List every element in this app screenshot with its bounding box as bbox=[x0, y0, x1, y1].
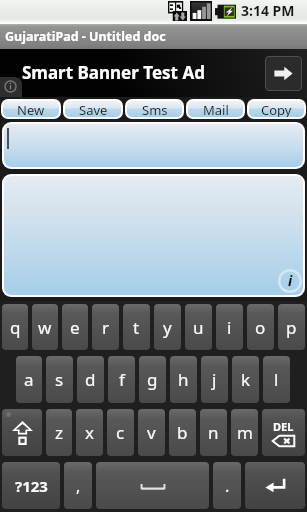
button[interactable]: a bbox=[16, 356, 42, 403]
button[interactable]: u bbox=[185, 304, 212, 350]
button[interactable] bbox=[2, 409, 42, 456]
button[interactable]: ?123 bbox=[2, 462, 60, 509]
staticText: DEL bbox=[273, 419, 294, 434]
staticText: Mail bbox=[203, 101, 229, 117]
button[interactable]: x bbox=[76, 409, 103, 456]
button[interactable]: l bbox=[263, 356, 290, 403]
button[interactable]: i bbox=[216, 304, 243, 350]
staticText: q bbox=[10, 316, 21, 339]
button[interactable]: Save bbox=[65, 101, 121, 117]
staticText: k bbox=[241, 368, 251, 391]
button[interactable]: r bbox=[92, 304, 119, 350]
staticText: h bbox=[178, 368, 189, 391]
button[interactable] bbox=[96, 462, 209, 509]
button[interactable]: s bbox=[46, 356, 73, 403]
staticText: y bbox=[163, 316, 172, 339]
button[interactable]: DEL bbox=[262, 409, 305, 456]
button[interactable]: , bbox=[64, 462, 92, 509]
button[interactable]: Info bbox=[4, 176, 303, 295]
staticText: e bbox=[70, 316, 80, 339]
button[interactable]: Sms bbox=[127, 101, 182, 117]
button[interactable]: h bbox=[170, 356, 197, 403]
button[interactable]: Copy bbox=[249, 101, 304, 117]
staticText: b bbox=[177, 421, 188, 444]
button[interactable] bbox=[4, 124, 303, 167]
staticText: Save bbox=[79, 101, 108, 117]
button[interactable]: p bbox=[278, 304, 305, 350]
button[interactable]: j bbox=[201, 356, 228, 403]
button[interactable]: b bbox=[169, 409, 196, 456]
staticText: Sms bbox=[142, 101, 168, 117]
button[interactable]: Mail bbox=[188, 101, 243, 117]
button[interactable]: w bbox=[32, 304, 58, 350]
staticText: i bbox=[227, 316, 232, 339]
button[interactable]: y bbox=[154, 304, 181, 350]
staticText: d bbox=[85, 368, 96, 391]
button[interactable]: d bbox=[77, 356, 104, 403]
button[interactable]: Open ad bbox=[265, 56, 302, 91]
staticText: x bbox=[85, 421, 94, 444]
staticText: z bbox=[55, 421, 63, 444]
staticText: t bbox=[133, 316, 140, 339]
button[interactable]: f bbox=[108, 356, 135, 403]
button[interactable]: z bbox=[46, 409, 72, 456]
button[interactable]: Ad info bbox=[0, 77, 22, 97]
button[interactable]: o bbox=[247, 304, 274, 350]
button[interactable]: g bbox=[139, 356, 166, 403]
staticText: v bbox=[147, 421, 156, 444]
staticText: Smart Banner Test Ad bbox=[22, 61, 205, 84]
button[interactable]: c bbox=[107, 409, 134, 456]
staticText: j bbox=[212, 368, 217, 391]
staticText: g bbox=[147, 368, 158, 391]
staticText: n bbox=[208, 421, 219, 444]
button[interactable]: . bbox=[213, 462, 241, 509]
button[interactable]: k bbox=[232, 356, 259, 403]
staticText: i bbox=[288, 271, 293, 290]
staticText: ?123 bbox=[15, 476, 48, 496]
button[interactable]: Info bbox=[278, 269, 302, 293]
staticText: GujaratiPad - Untitled doc bbox=[5, 28, 166, 45]
button[interactable]: v bbox=[138, 409, 165, 456]
staticText: 3:14 PM bbox=[241, 1, 295, 20]
staticText: m bbox=[237, 421, 253, 444]
button[interactable]: m bbox=[231, 409, 258, 456]
staticText: New bbox=[17, 101, 45, 117]
button[interactable]: Smart Banner Test Ad bbox=[0, 49, 307, 97]
staticText: l bbox=[274, 368, 279, 391]
staticText: , bbox=[76, 475, 81, 497]
button[interactable]: New bbox=[3, 101, 59, 117]
staticText: w bbox=[38, 316, 52, 339]
staticText: . bbox=[225, 475, 230, 497]
button[interactable]: t bbox=[123, 304, 150, 350]
staticText: p bbox=[286, 316, 297, 339]
staticText: r bbox=[102, 316, 110, 339]
staticText: s bbox=[55, 368, 64, 391]
staticText: o bbox=[255, 316, 266, 339]
button[interactable]: e bbox=[62, 304, 88, 350]
staticText: Copy bbox=[261, 101, 292, 117]
button[interactable]: q bbox=[2, 304, 28, 350]
staticText: f bbox=[119, 368, 125, 391]
button[interactable] bbox=[245, 462, 305, 509]
staticText: u bbox=[193, 316, 204, 339]
staticText: c bbox=[116, 421, 125, 444]
button[interactable]: n bbox=[200, 409, 227, 456]
staticText: a bbox=[24, 368, 34, 391]
